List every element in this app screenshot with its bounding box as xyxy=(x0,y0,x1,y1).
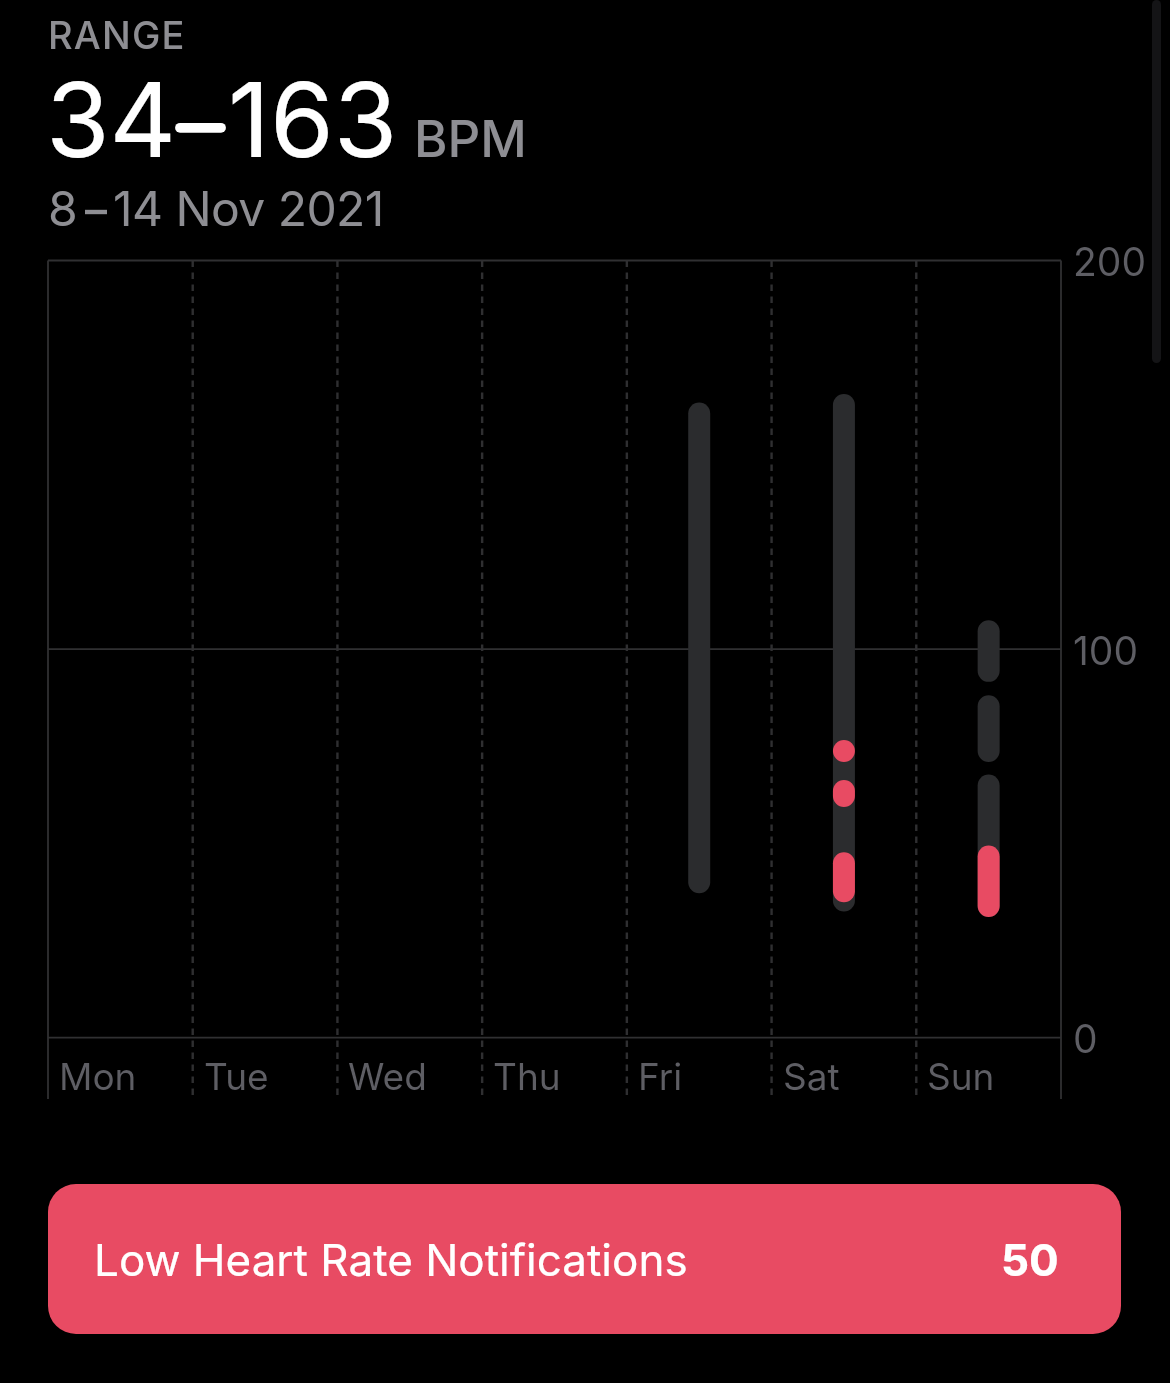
staticText: Thu xyxy=(493,1054,561,1099)
staticText: Sun xyxy=(927,1054,995,1099)
staticText: Wed xyxy=(348,1054,427,1099)
staticText: 14 Nov 2021 xyxy=(113,179,384,237)
staticText: Low Heart Rate Notifications xyxy=(94,1233,688,1286)
staticText: RANGE xyxy=(48,12,186,58)
staticText: Fri xyxy=(638,1054,683,1099)
staticText: BPM xyxy=(414,108,527,170)
staticText: 200 xyxy=(1073,238,1146,285)
staticText: 50 xyxy=(1001,1233,1059,1286)
staticText: 163 xyxy=(228,57,398,182)
staticText: 8 xyxy=(48,179,78,237)
staticText: Mon xyxy=(59,1054,137,1099)
button[interactable]: Low Heart Rate Notifications xyxy=(48,1184,1121,1334)
staticText: Sat xyxy=(783,1054,840,1099)
staticText: Tue xyxy=(204,1054,269,1099)
staticText: 100 xyxy=(1073,627,1139,674)
staticText: 34 xyxy=(46,57,177,182)
staticText: 0 xyxy=(1073,1015,1098,1062)
